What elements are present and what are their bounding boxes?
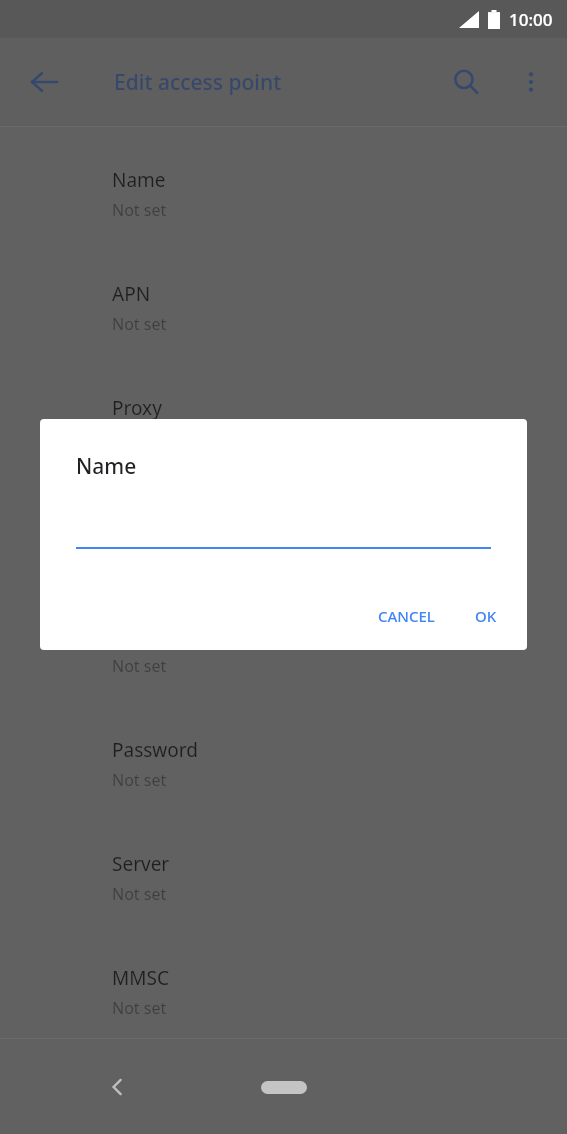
staticText: Not set bbox=[112, 655, 167, 677]
staticText: 10:00 bbox=[509, 8, 553, 31]
staticText: Not set bbox=[112, 541, 167, 563]
button[interactable]: Username bbox=[0, 611, 567, 725]
button[interactable]: CANCEL bbox=[370, 598, 443, 634]
staticText: Not set bbox=[112, 199, 167, 221]
staticText: Password bbox=[112, 737, 198, 763]
button[interactable]: Proxy bbox=[0, 383, 567, 497]
staticText: OK bbox=[475, 606, 497, 626]
button[interactable] bbox=[76, 499, 491, 549]
staticText: CANCEL bbox=[378, 606, 435, 626]
staticText: Not set bbox=[112, 313, 167, 335]
button[interactable]: Back bbox=[90, 1059, 146, 1115]
staticText: Name bbox=[76, 452, 137, 481]
button[interactable]: Port bbox=[0, 497, 567, 611]
staticText: APN bbox=[112, 281, 151, 307]
staticText: Not set bbox=[112, 883, 167, 905]
staticText: Server bbox=[112, 851, 170, 877]
button[interactable]: Home bbox=[244, 1066, 324, 1108]
staticText: Edit access point bbox=[114, 68, 282, 97]
staticText: Name bbox=[112, 167, 166, 193]
button[interactable]: Back bbox=[16, 54, 72, 110]
staticText: Not set bbox=[112, 769, 167, 791]
button[interactable]: More options bbox=[503, 54, 559, 110]
button[interactable]: Search bbox=[438, 54, 494, 110]
button[interactable]: OK bbox=[467, 598, 505, 634]
button[interactable]: Server bbox=[0, 839, 567, 953]
button[interactable]: Name bbox=[0, 155, 567, 269]
staticText: Not set bbox=[112, 997, 167, 1019]
staticText: Proxy bbox=[112, 395, 162, 421]
button[interactable]: MMSC bbox=[0, 953, 567, 1067]
button[interactable]: Password bbox=[0, 725, 567, 839]
button[interactable]: APN bbox=[0, 269, 567, 383]
staticText: MMSC bbox=[112, 965, 169, 991]
